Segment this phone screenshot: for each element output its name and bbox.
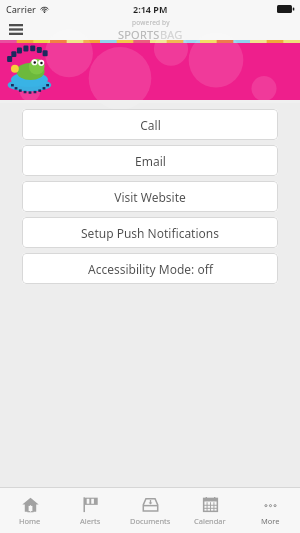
- staticText: Alerts: [80, 516, 101, 526]
- button[interactable]: More: [240, 488, 300, 533]
- button[interactable]: Documents: [120, 488, 180, 533]
- staticText: More: [261, 516, 280, 526]
- staticText: Setup Push Notifications: [81, 225, 219, 241]
- button[interactable]: Visit Website: [22, 181, 278, 212]
- button[interactable]: Email: [22, 145, 278, 176]
- staticText: BAG: [160, 27, 183, 40]
- staticText: Call: [140, 117, 161, 133]
- staticText: Calendar: [194, 516, 226, 526]
- button[interactable]: Menu: [7, 21, 24, 38]
- staticText: Accessibility Mode: off: [88, 261, 213, 277]
- staticText: SPORTS: [118, 27, 160, 40]
- button[interactable]: Setup Push Notifications: [22, 217, 278, 248]
- button[interactable]: Calendar: [180, 488, 240, 533]
- button[interactable]: Home: [0, 488, 60, 533]
- staticText: Email: [135, 153, 166, 169]
- staticText: 2:14 PM: [133, 3, 168, 15]
- staticText: Visit Website: [114, 189, 186, 205]
- button[interactable]: Call: [22, 109, 278, 140]
- button[interactable]: Alerts: [60, 488, 120, 533]
- button[interactable]: Accessibility Mode: off: [22, 253, 278, 284]
- staticText: Documents: [130, 516, 171, 526]
- staticText: Home: [19, 516, 41, 526]
- staticText: powered by: [132, 18, 170, 27]
- staticText: Carrier: [6, 3, 36, 15]
